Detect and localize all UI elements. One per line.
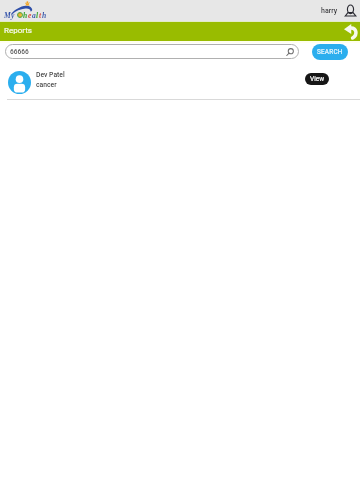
staticText: cancer xyxy=(36,81,57,89)
button[interactable]: SEARCH xyxy=(312,44,348,60)
staticText: SEARCH xyxy=(317,48,343,56)
staticText: y xyxy=(11,11,15,19)
staticText: harry xyxy=(321,7,338,15)
staticText: h xyxy=(42,11,47,19)
button[interactable]: Search field xyxy=(5,44,299,59)
button[interactable]: View xyxy=(305,73,329,85)
staticText: e xyxy=(28,11,32,19)
staticText: t xyxy=(39,11,42,19)
staticText: l xyxy=(36,11,39,19)
staticText: h xyxy=(23,11,28,19)
staticText: Dev Patel xyxy=(36,71,65,79)
button[interactable]: Dev Patel xyxy=(0,62,360,99)
staticText: a xyxy=(32,11,36,19)
staticText: Reports xyxy=(4,26,32,35)
button[interactable]: Account harry xyxy=(321,5,356,16)
staticText: 66666 xyxy=(10,48,29,56)
button[interactable]: Myehealth logo xyxy=(2,0,48,21)
button[interactable]: Back xyxy=(344,24,357,38)
staticText: View xyxy=(310,75,325,83)
staticText: M xyxy=(4,11,11,19)
